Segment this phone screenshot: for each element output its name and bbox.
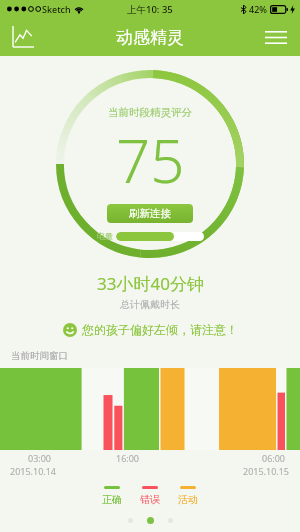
staticText: 上午10: 35 bbox=[127, 3, 173, 16]
staticText: 您的孩子偏好左倾，请注意！ bbox=[82, 322, 238, 337]
staticText: 33小时40分钟 bbox=[97, 272, 204, 295]
staticText: 错误 bbox=[140, 493, 160, 506]
button[interactable]: Menu bbox=[262, 23, 290, 51]
staticText: 电量 bbox=[97, 231, 113, 241]
staticText: 正确 bbox=[102, 493, 122, 506]
staticText: 总计佩戴时长 bbox=[120, 298, 180, 311]
staticText: Sketch bbox=[42, 3, 71, 15]
staticText: 03:00 bbox=[28, 452, 52, 464]
button[interactable]: 刷新连接 bbox=[107, 204, 193, 223]
button[interactable]: Statistics bbox=[9, 23, 37, 51]
button[interactable] bbox=[168, 518, 173, 523]
button[interactable] bbox=[147, 517, 154, 524]
staticText: 当前时段精灵评分 bbox=[108, 106, 192, 119]
staticText: 当前时间窗口 bbox=[11, 350, 68, 362]
staticText: 75 bbox=[116, 119, 185, 201]
button[interactable] bbox=[128, 518, 133, 523]
button[interactable]: 错误 bbox=[140, 486, 160, 506]
staticText: 2015.10.14 bbox=[10, 465, 57, 477]
button[interactable]: 活动 bbox=[178, 486, 198, 506]
staticText: 2015.10.15 bbox=[243, 465, 290, 477]
staticText: 动感精灵 bbox=[116, 27, 184, 48]
staticText: 16:00 bbox=[116, 452, 140, 464]
staticText: 刷新连接 bbox=[129, 207, 171, 220]
staticText: 06:00 bbox=[262, 452, 286, 464]
staticText: 42% bbox=[249, 3, 267, 15]
button[interactable] bbox=[0, 368, 300, 450]
staticText: 活动 bbox=[178, 493, 198, 506]
button[interactable]: 您的孩子偏好左倾，请注意！ bbox=[0, 322, 300, 337]
button[interactable]: 正确 bbox=[102, 486, 122, 506]
